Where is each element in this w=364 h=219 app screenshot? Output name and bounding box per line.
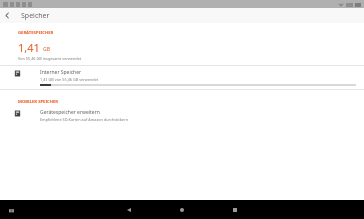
staticText: Empfohlene SD-Karten auf Amazon durchstö… xyxy=(40,117,129,122)
staticText: Interner Speicher xyxy=(40,69,82,76)
staticText: 1,41 GB von 55,46 GB verwendet xyxy=(40,77,99,82)
button[interactable]: Interner Speicher xyxy=(0,65,364,90)
button[interactable]: Gerätespeicher erweitern xyxy=(0,107,364,126)
staticText: Von 55,46 GB insgesamt verwendet xyxy=(18,56,82,61)
staticText: GERÄTESPEICHER xyxy=(18,30,54,36)
button[interactable]: Startbildschirm xyxy=(176,204,188,216)
button[interactable]: Zurück xyxy=(0,8,15,23)
button[interactable]: Screenshot xyxy=(6,205,16,215)
staticText: Speicher xyxy=(21,11,50,21)
button[interactable]: Zurück xyxy=(123,204,135,216)
staticText: 1,41 xyxy=(18,40,40,55)
staticText: Gerätespeicher erweitern xyxy=(40,109,100,116)
staticText: MOBILER SPEICHER xyxy=(18,99,59,105)
button[interactable]: Übersicht xyxy=(229,204,241,216)
staticText: GB xyxy=(43,46,50,53)
